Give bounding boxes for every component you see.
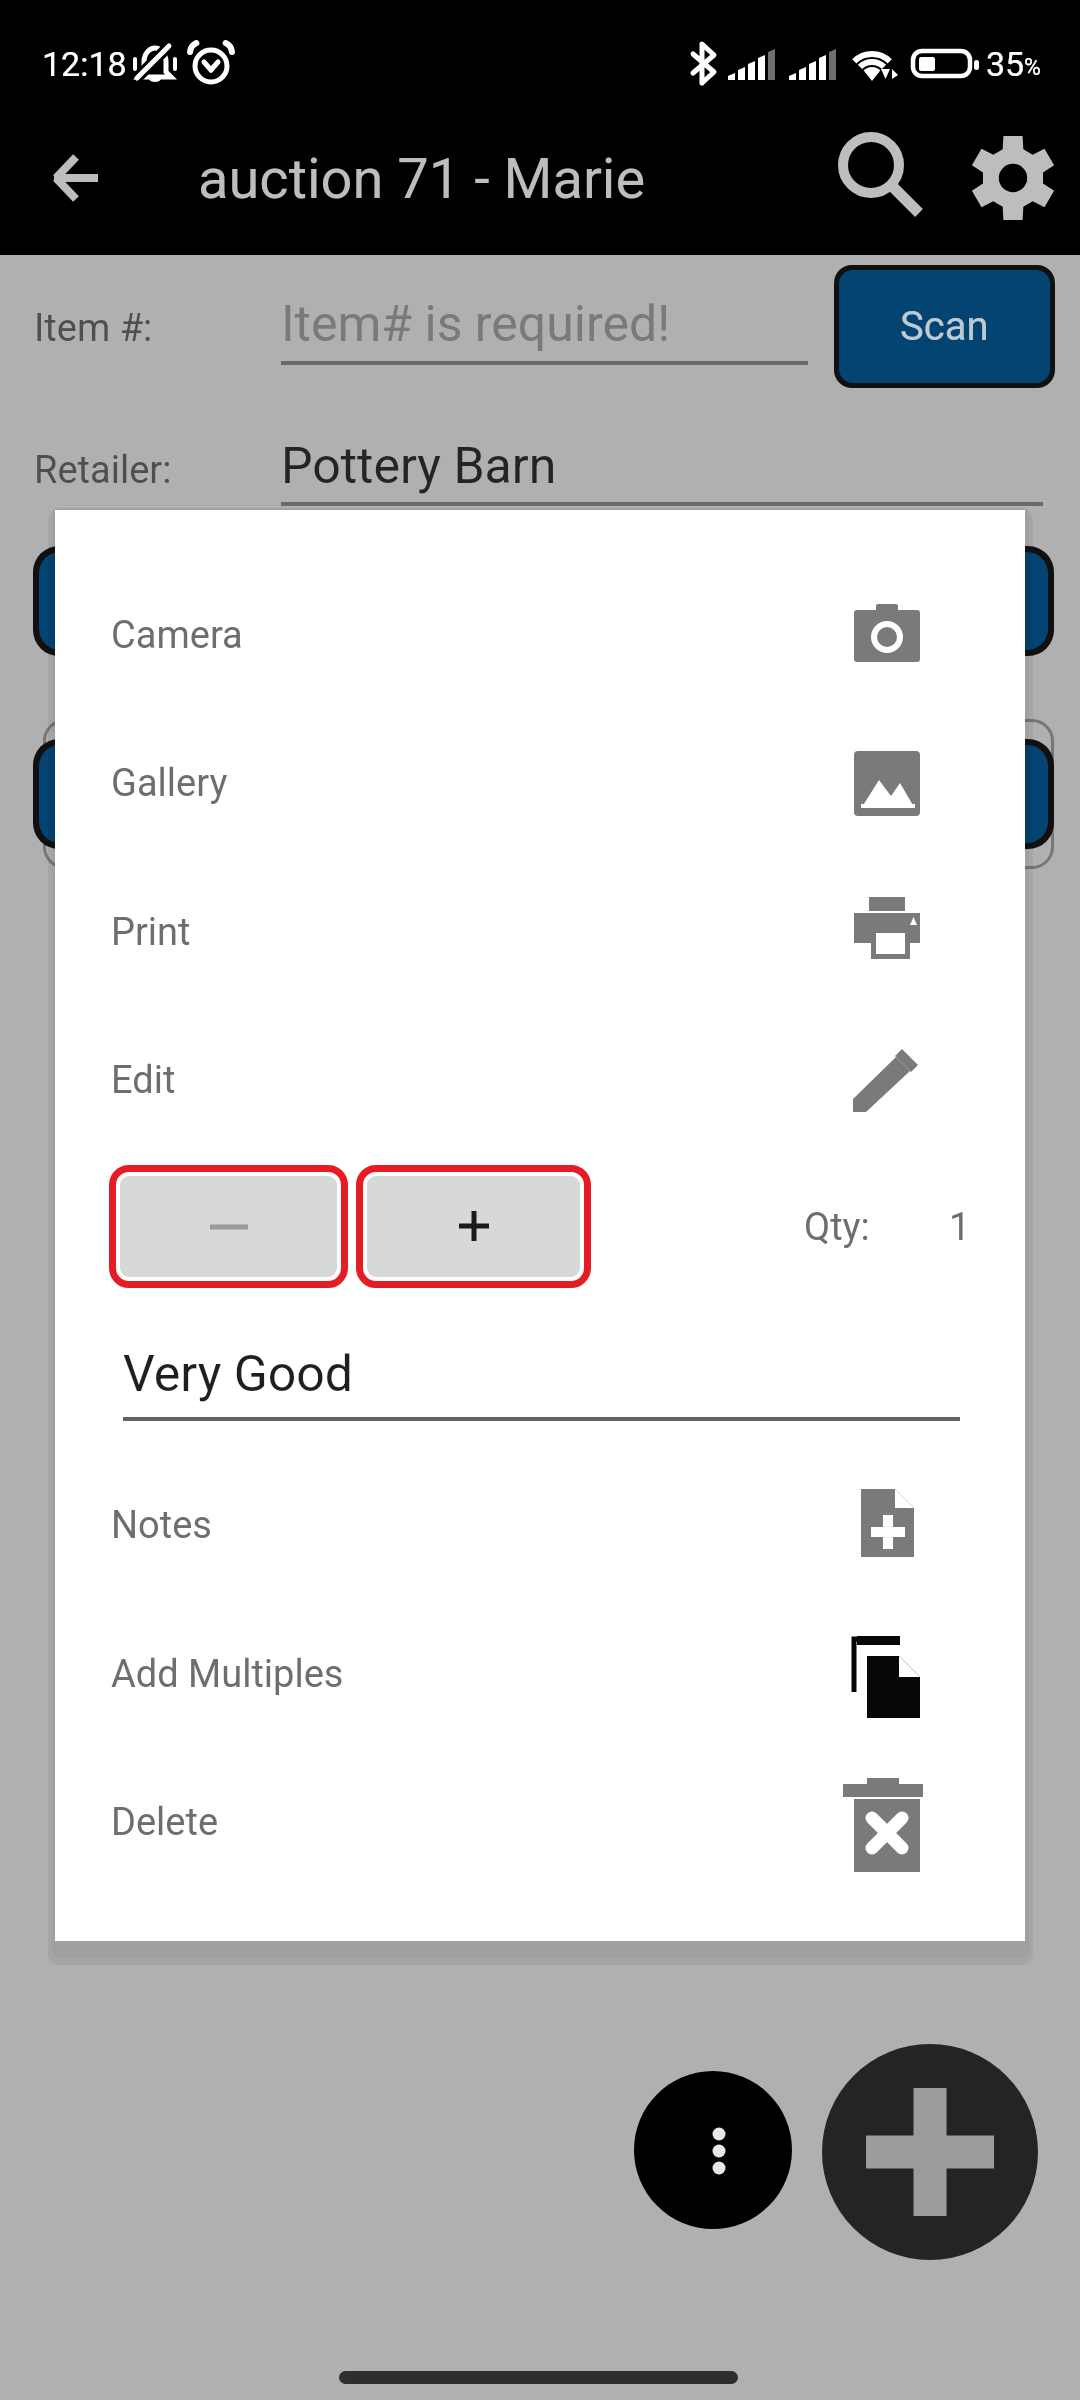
button[interactable]: Add Multiples: [55, 1612, 1025, 1730]
staticText: %: [1024, 54, 1041, 81]
staticText: Item# is required!: [281, 295, 671, 354]
button[interactable]: More options: [634, 2071, 792, 2229]
button[interactable]: Back: [28, 130, 124, 226]
button[interactable]: Gallery: [55, 721, 1025, 839]
button[interactable]: Notes: [55, 1463, 1025, 1581]
button[interactable]: Delete: [55, 1760, 1025, 1878]
button[interactable]: Add: [822, 2044, 1038, 2260]
staticText: Item #:: [34, 306, 153, 351]
staticText: Pottery Barn: [281, 437, 557, 496]
staticText: 12:18: [42, 44, 127, 84]
button[interactable]: Search: [834, 130, 930, 226]
button[interactable]: Print: [55, 870, 1025, 988]
staticText: Add Multiples: [111, 1652, 344, 1697]
staticText: Very Good: [123, 1345, 354, 1404]
staticText: Retailer:: [34, 448, 172, 493]
staticText: Camera: [111, 613, 243, 658]
button[interactable]: Settings: [965, 130, 1061, 226]
staticText: 1: [949, 1205, 971, 1250]
button[interactable]: [367, 1176, 580, 1277]
staticText: Edit: [111, 1058, 176, 1103]
staticText: Print: [111, 910, 191, 955]
button[interactable]: [120, 1176, 337, 1277]
staticText: auction 71 - Marie: [198, 146, 646, 212]
button[interactable]: Edit: [55, 1018, 1025, 1136]
button[interactable]: Scan: [839, 270, 1050, 383]
staticText: Qty:: [804, 1205, 870, 1250]
staticText: Gallery: [111, 761, 228, 806]
button[interactable]: Camera: [55, 573, 1025, 691]
staticText: 35: [986, 44, 1025, 84]
staticText: Delete: [111, 1800, 219, 1845]
staticText: Scan: [900, 303, 989, 350]
staticText: Notes: [111, 1503, 212, 1548]
